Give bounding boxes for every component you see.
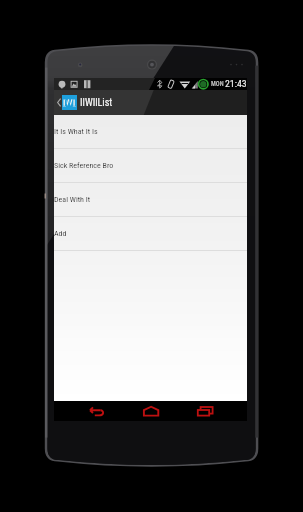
staticText: 21:43 (225, 78, 247, 89)
button[interactable]: Add (54, 217, 247, 250)
button[interactable]: Navigate up (54, 90, 247, 115)
staticText: Add (54, 229, 67, 238)
staticText: Sick Reference Bro (54, 161, 114, 170)
staticText: IlWIlList (80, 97, 113, 109)
staticText: MON (211, 80, 224, 88)
button[interactable]: Back (79, 401, 115, 421)
staticText: Deal With It (54, 195, 91, 204)
button[interactable]: Recent apps (187, 401, 223, 421)
button[interactable]: Deal With It (54, 183, 247, 216)
button[interactable]: It Is What It Is (54, 115, 247, 148)
staticText: It Is What It Is (54, 127, 98, 136)
button[interactable]: Sick Reference Bro (54, 149, 247, 182)
button[interactable]: Home (133, 401, 169, 421)
